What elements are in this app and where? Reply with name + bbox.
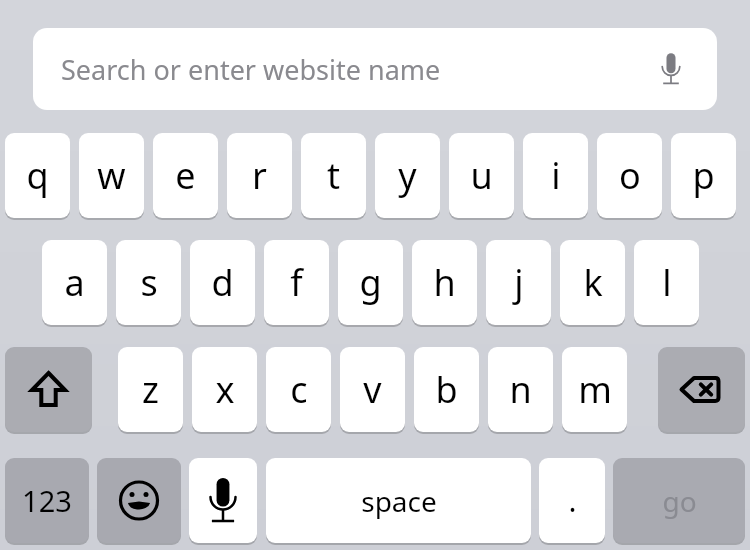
button[interactable]: m: [562, 347, 627, 432]
button[interactable]: w: [79, 133, 144, 218]
button[interactable]: y: [375, 133, 440, 218]
button[interactable]: x: [192, 347, 257, 432]
button[interactable]: g: [338, 240, 403, 325]
staticText: s: [140, 258, 158, 307]
button[interactable]: Dictate: [189, 458, 257, 543]
staticText: i: [551, 151, 561, 200]
staticText: u: [470, 151, 493, 200]
staticText: b: [435, 365, 458, 414]
button[interactable]: Shift: [5, 347, 92, 432]
staticText: h: [433, 258, 456, 307]
staticText: a: [64, 258, 85, 307]
staticText: e: [175, 151, 196, 200]
staticText: g: [359, 258, 382, 307]
staticText: r: [252, 151, 267, 200]
button[interactable]: z: [118, 347, 183, 432]
button[interactable]: f: [264, 240, 329, 325]
button[interactable]: u: [449, 133, 514, 218]
button[interactable]: Emoji keyboard: [97, 458, 181, 543]
staticText: 123: [22, 481, 72, 520]
button[interactable]: n: [488, 347, 553, 432]
staticText: z: [142, 365, 159, 414]
staticText: o: [619, 151, 641, 200]
staticText: j: [514, 258, 524, 307]
staticText: l: [662, 258, 672, 307]
staticText: n: [509, 365, 532, 414]
button[interactable]: Search or enter website name: [33, 28, 717, 110]
button[interactable]: Backspace: [658, 347, 745, 432]
button[interactable]: b: [414, 347, 479, 432]
button[interactable]: .: [539, 458, 605, 543]
button[interactable]: e: [153, 133, 218, 218]
button[interactable]: v: [340, 347, 405, 432]
button[interactable]: go: [613, 458, 745, 543]
button[interactable]: l: [634, 240, 699, 325]
staticText: y: [398, 151, 417, 200]
button[interactable]: h: [412, 240, 477, 325]
button[interactable]: r: [227, 133, 292, 218]
staticText: c: [290, 365, 308, 414]
button[interactable]: o: [597, 133, 662, 218]
button[interactable]: j: [486, 240, 551, 325]
button[interactable]: a: [42, 240, 107, 325]
staticText: .: [568, 480, 577, 521]
button[interactable]: 123: [5, 458, 89, 543]
button[interactable]: i: [523, 133, 588, 218]
staticText: p: [692, 151, 715, 200]
button[interactable]: s: [116, 240, 181, 325]
staticText: Search or enter website name: [61, 51, 441, 88]
button[interactable]: k: [560, 240, 625, 325]
staticText: d: [211, 258, 234, 307]
staticText: v: [363, 365, 382, 414]
button[interactable]: q: [5, 133, 70, 218]
staticText: f: [290, 258, 303, 307]
button[interactable]: c: [266, 347, 331, 432]
staticText: x: [215, 365, 235, 414]
button[interactable]: d: [190, 240, 255, 325]
button[interactable]: t: [301, 133, 366, 218]
staticText: k: [583, 258, 603, 307]
staticText: t: [327, 151, 340, 200]
staticText: q: [26, 151, 49, 200]
button[interactable]: Voice search: [649, 43, 693, 95]
staticText: w: [97, 151, 126, 200]
staticText: space: [361, 482, 437, 520]
button[interactable]: space: [266, 458, 531, 543]
staticText: go: [662, 482, 697, 520]
staticText: m: [578, 365, 612, 414]
button[interactable]: p: [671, 133, 736, 218]
